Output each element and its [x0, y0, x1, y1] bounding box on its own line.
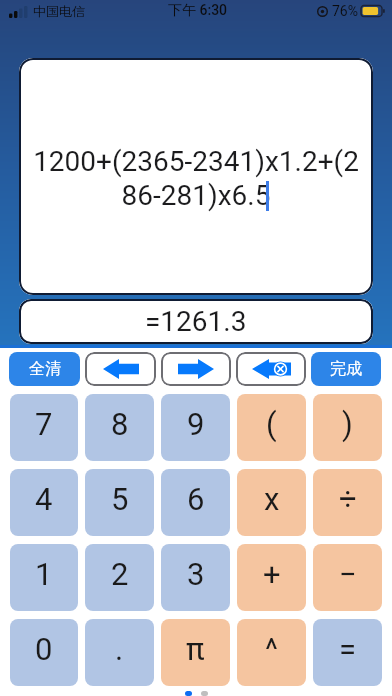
button[interactable]: ÷ [313, 469, 382, 536]
staticText: . [115, 631, 124, 667]
staticText: 1 [35, 556, 53, 592]
staticText: 0 [35, 631, 53, 667]
staticText: − [339, 556, 357, 592]
staticText: 1200+(2365-2341)x1.2+(2 86-281)x6.5 [33, 145, 359, 212]
staticText: 完成 [330, 359, 362, 379]
staticText: =1261.3 [145, 305, 247, 338]
staticText: ) [342, 406, 353, 442]
button[interactable] [161, 352, 231, 386]
button[interactable]: =1261.3 [19, 299, 373, 344]
staticText: 下午 6:30 [168, 2, 228, 20]
button[interactable]: π [161, 619, 230, 686]
staticText: 2 [111, 556, 129, 592]
button[interactable]: = [313, 619, 382, 686]
staticText: ^ [265, 631, 278, 667]
staticText: 全清 [29, 359, 61, 379]
button[interactable]: 5 [85, 469, 154, 536]
staticText: 7 [35, 406, 53, 442]
button[interactable]: 1200+(2365-2341)x1.2+(2 86-281)x6.5 [19, 58, 373, 295]
staticText: ( [266, 406, 277, 442]
button[interactable]: 全清 [9, 352, 80, 386]
button[interactable]: ^ [237, 619, 306, 686]
staticText: = [339, 631, 357, 667]
button[interactable]: 0 [10, 619, 78, 686]
staticText: 9 [187, 406, 205, 442]
button[interactable]: 6 [161, 469, 230, 536]
button[interactable]: x [237, 469, 306, 536]
staticText: 8 [111, 406, 129, 442]
staticText: + [263, 556, 281, 592]
button[interactable]: 2 [85, 544, 154, 611]
button[interactable]: 7 [10, 394, 78, 461]
staticText: π [186, 631, 205, 667]
staticText: 3 [187, 556, 205, 592]
button[interactable]: . [85, 619, 154, 686]
button[interactable]: ) [313, 394, 382, 461]
staticText: x [264, 481, 280, 517]
staticText: 中国电信 [33, 3, 85, 19]
button[interactable]: ( [237, 394, 306, 461]
button[interactable]: 3 [161, 544, 230, 611]
staticText: 4 [35, 481, 53, 517]
button[interactable]: 4 [10, 469, 78, 536]
staticText: 5 [111, 481, 129, 517]
button[interactable]: 完成 [311, 352, 381, 386]
button[interactable]: 1 [10, 544, 78, 611]
button[interactable]: 9 [161, 394, 230, 461]
button[interactable] [236, 352, 306, 386]
staticText: 76% [332, 3, 358, 19]
button[interactable] [85, 352, 156, 386]
button[interactable]: 8 [85, 394, 154, 461]
button[interactable]: + [237, 544, 306, 611]
staticText: ÷ [339, 481, 357, 517]
button[interactable]: − [313, 544, 382, 611]
staticText: 6 [187, 481, 205, 517]
